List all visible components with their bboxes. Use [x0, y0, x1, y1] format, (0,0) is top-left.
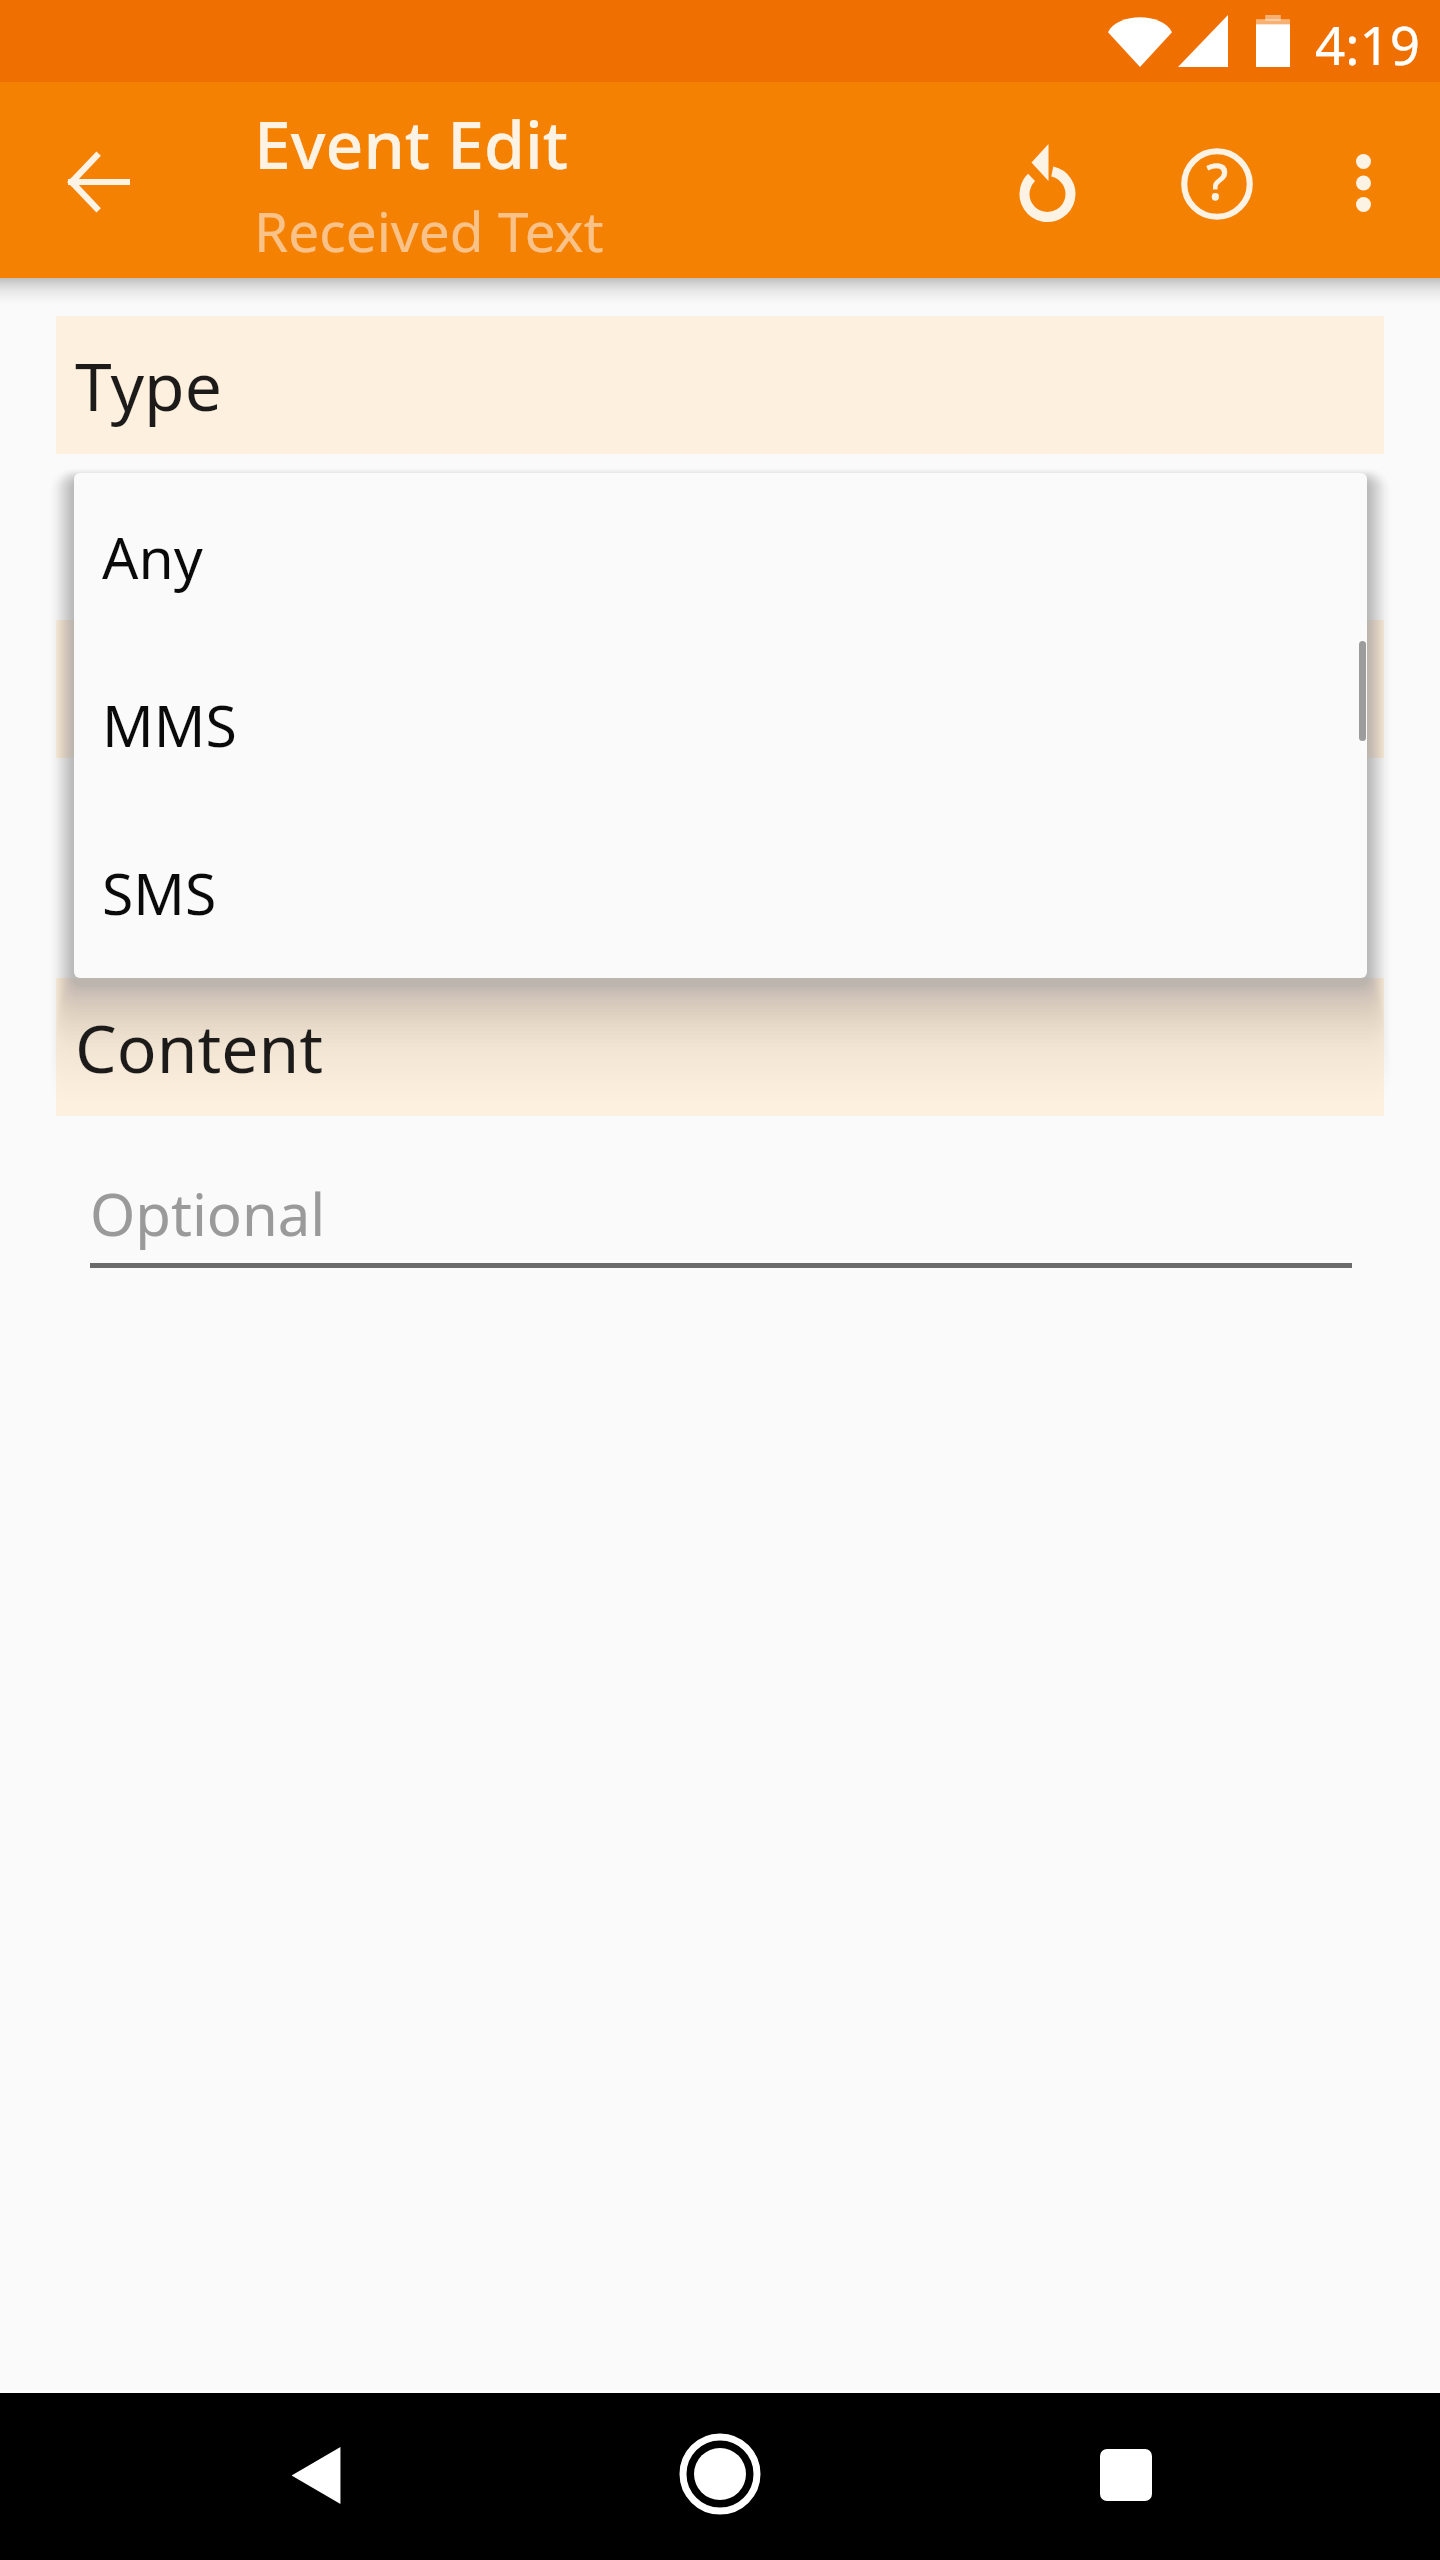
button[interactable]: Any — [74, 473, 1367, 641]
button[interactable]: Optional — [90, 1174, 1352, 1268]
staticText: SMS — [102, 854, 217, 932]
staticText: Any — [102, 518, 203, 596]
staticText: 4:19 — [1315, 8, 1421, 80]
button[interactable]: MMS — [74, 641, 1367, 809]
staticText: Content — [75, 1002, 324, 1092]
button[interactable]: SMS — [74, 809, 1367, 977]
staticText: MMS — [102, 686, 237, 764]
staticText: Type — [75, 340, 222, 430]
staticText: ? — [1206, 147, 1229, 215]
button[interactable] — [56, 620, 1384, 758]
button[interactable]: More options — [1305, 125, 1421, 241]
button[interactable]: Recent apps — [1066, 2415, 1186, 2535]
button[interactable]: Help — [1159, 126, 1275, 242]
button[interactable]: Back — [256, 2415, 376, 2535]
button[interactable]: Type — [56, 316, 1384, 454]
staticText: Event Edit — [254, 98, 569, 188]
button[interactable]: Undo — [990, 122, 1106, 238]
staticText: Optional — [90, 1174, 326, 1253]
button[interactable]: Navigate up — [41, 124, 157, 240]
staticText: Received Text — [254, 193, 604, 268]
button[interactable]: Home — [660, 2414, 780, 2534]
button[interactable]: Content — [56, 978, 1384, 1116]
